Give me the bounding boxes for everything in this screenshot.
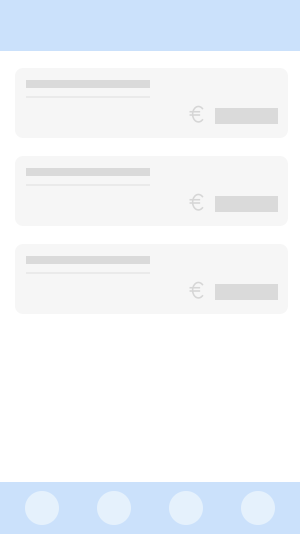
button[interactable]: [15, 156, 288, 226]
button[interactable]: More: [241, 491, 275, 525]
button[interactable]: Transfers: [97, 491, 131, 525]
button[interactable]: [15, 68, 288, 138]
button[interactable]: Accounts: [25, 491, 59, 525]
button[interactable]: Cards: [169, 491, 203, 525]
button[interactable]: [15, 244, 288, 314]
